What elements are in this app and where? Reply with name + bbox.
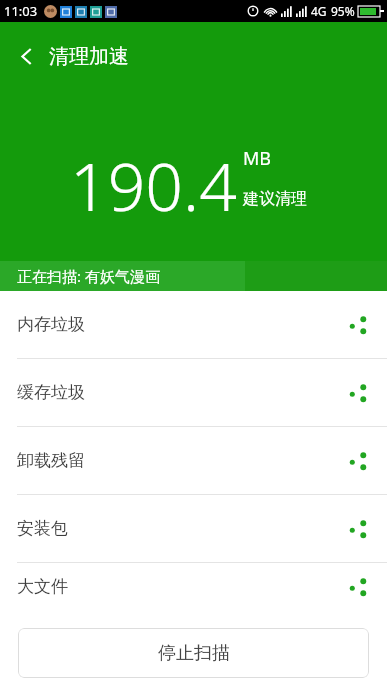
button[interactable]: 安装包 [0, 495, 387, 562]
staticText: 4G [311, 3, 327, 19]
other: 返回 [18, 48, 35, 65]
staticText: 190.4 [70, 140, 237, 230]
button[interactable]: 内存垃圾 [0, 291, 387, 358]
staticText: 正在扫描: 有妖气漫画 [17, 266, 160, 286]
button[interactable]: 停止扫描 [18, 628, 369, 678]
button[interactable]: 返回 [8, 36, 139, 77]
staticText: 95% [331, 3, 355, 19]
staticText: 清理加速 [49, 44, 129, 69]
staticText: MB [243, 146, 272, 171]
staticText: 缓存垃圾 [17, 382, 85, 403]
staticText: 安装包 [17, 518, 68, 539]
staticText: 内存垃圾 [17, 314, 85, 335]
staticText: 大文件 [17, 576, 68, 597]
staticText: 卸载残留 [17, 450, 85, 471]
staticText: 11:03 [4, 2, 38, 20]
button[interactable]: 大文件 [0, 563, 387, 610]
staticText: 停止扫描 [158, 642, 230, 665]
button[interactable]: 缓存垃圾 [0, 359, 387, 426]
button[interactable]: 卸载残留 [0, 427, 387, 494]
staticText: 建议清理 [243, 189, 307, 209]
